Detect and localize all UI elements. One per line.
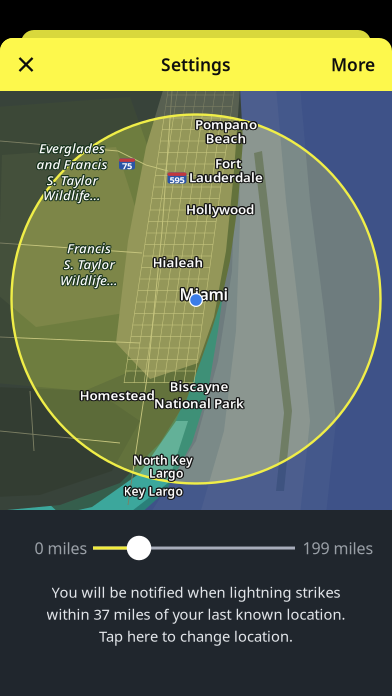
staticText: S. Taylor bbox=[46, 171, 97, 189]
staticText: Fort bbox=[214, 154, 240, 172]
staticText: Wildlife… bbox=[43, 186, 101, 204]
staticText: Hialeah bbox=[152, 252, 203, 270]
staticText: Wildlife… bbox=[42, 186, 100, 204]
staticText: S. Taylor bbox=[63, 254, 114, 272]
staticText: National Park bbox=[154, 393, 244, 411]
staticText: Hialeah bbox=[151, 253, 202, 271]
staticText: Beach bbox=[205, 130, 246, 148]
staticText: North Key bbox=[133, 453, 193, 469]
staticText: Lauderdale bbox=[188, 168, 262, 186]
staticText: Hollywood bbox=[186, 199, 254, 217]
staticText: Largo bbox=[149, 466, 183, 482]
staticText: Miami bbox=[179, 283, 228, 305]
staticText: Largo bbox=[148, 466, 182, 482]
staticText: Homestead bbox=[79, 385, 154, 403]
staticText: S. Taylor bbox=[47, 170, 98, 188]
staticText: Everglades bbox=[40, 138, 106, 156]
staticText: Largo bbox=[150, 466, 184, 482]
staticText: Hollywood bbox=[187, 200, 255, 218]
staticText: Largo bbox=[148, 464, 182, 480]
staticText: Everglades bbox=[39, 138, 105, 156]
staticText: Hialeah bbox=[153, 252, 204, 270]
staticText: Hollywood bbox=[185, 199, 253, 217]
staticText: Lauderdale bbox=[190, 168, 264, 186]
staticText: Tap here to change location. bbox=[99, 626, 293, 646]
staticText: North Key bbox=[134, 452, 194, 468]
staticText: North Key bbox=[133, 451, 193, 467]
staticText: Pompano bbox=[194, 116, 256, 134]
staticText: Homestead bbox=[79, 387, 154, 405]
staticText: Lauderdale bbox=[188, 167, 262, 185]
staticText: Key Largo bbox=[125, 483, 184, 499]
staticText: Francis bbox=[66, 239, 110, 257]
staticText: Biscayne bbox=[170, 378, 229, 396]
staticText: Biscayne bbox=[169, 376, 228, 394]
staticText: Fort bbox=[214, 153, 240, 171]
button[interactable]: Notification radius bbox=[0, 535, 392, 561]
staticText: Francis bbox=[66, 240, 110, 258]
staticText: Pompano bbox=[194, 115, 256, 133]
staticText: Largo bbox=[149, 465, 183, 481]
staticText: Lauderdale bbox=[189, 167, 263, 185]
button[interactable]: More bbox=[320, 38, 386, 91]
staticText: Biscayne bbox=[171, 377, 230, 395]
staticText: North Key bbox=[133, 452, 193, 468]
staticText: Wildlife… bbox=[44, 185, 102, 203]
staticText: Francis bbox=[68, 240, 112, 258]
staticText: Lauderdale bbox=[189, 169, 263, 187]
staticText: Wildlife… bbox=[44, 186, 102, 204]
staticText: Hollywood bbox=[187, 199, 255, 217]
staticText: 595 bbox=[169, 173, 184, 186]
staticText: Fort bbox=[214, 155, 240, 173]
staticText: National Park bbox=[155, 395, 245, 413]
staticText: and Francis bbox=[37, 154, 108, 172]
staticText: Beach bbox=[205, 129, 246, 147]
staticText: Biscayne bbox=[168, 377, 227, 395]
staticText: Key Largo bbox=[123, 484, 182, 500]
staticText: National Park bbox=[153, 395, 243, 413]
staticText: Homestead bbox=[79, 387, 154, 405]
staticText: Key Largo bbox=[124, 482, 183, 498]
staticText: Key Largo bbox=[123, 483, 182, 499]
staticText: S. Taylor bbox=[46, 170, 97, 188]
staticText: S. Taylor bbox=[46, 170, 97, 188]
staticText: Key Largo bbox=[123, 482, 182, 498]
staticText: S. Taylor bbox=[46, 172, 97, 190]
staticText: Wildlife… bbox=[61, 272, 119, 290]
staticText: Miami bbox=[180, 282, 229, 304]
staticText: Fort bbox=[216, 154, 242, 172]
staticText: Key Largo bbox=[123, 484, 182, 500]
staticText: and Francis bbox=[36, 156, 107, 174]
staticText: S. Taylor bbox=[64, 256, 115, 274]
staticText: Everglades bbox=[38, 139, 104, 157]
staticText: Miami bbox=[179, 285, 228, 306]
staticText: S. Taylor bbox=[46, 172, 97, 190]
staticText: within 37 miles of your last known locat… bbox=[46, 604, 345, 624]
staticText: and Francis bbox=[36, 154, 107, 172]
staticText: Beach bbox=[204, 129, 245, 147]
staticText: Fort bbox=[215, 155, 241, 173]
staticText: Miami bbox=[181, 283, 230, 305]
staticText: Key Largo bbox=[123, 482, 182, 498]
staticText: North Key bbox=[132, 452, 192, 468]
staticText: and Francis bbox=[36, 155, 107, 173]
staticText: Largo bbox=[150, 465, 184, 481]
staticText: Hialeah bbox=[153, 254, 204, 272]
staticText: Miami bbox=[179, 282, 228, 303]
staticText: S. Taylor bbox=[47, 172, 98, 190]
staticText: Hialeah bbox=[152, 254, 203, 272]
staticText: S. Taylor bbox=[62, 255, 113, 273]
staticText: Wildlife… bbox=[60, 271, 118, 289]
staticText: Hialeah bbox=[154, 253, 205, 271]
staticText: Miami bbox=[180, 284, 229, 305]
staticText: S. Taylor bbox=[65, 255, 116, 273]
staticText: Homestead bbox=[80, 385, 155, 403]
staticText: Wildlife… bbox=[42, 185, 100, 203]
staticText: Hollywood bbox=[185, 201, 253, 219]
staticText: Pompano bbox=[196, 116, 258, 134]
staticText: Fort bbox=[216, 153, 242, 171]
staticText: S. Taylor bbox=[45, 171, 96, 189]
button[interactable]: Close bbox=[0, 38, 52, 91]
staticText: and Francis bbox=[36, 154, 107, 172]
staticText: North Key bbox=[134, 453, 194, 469]
